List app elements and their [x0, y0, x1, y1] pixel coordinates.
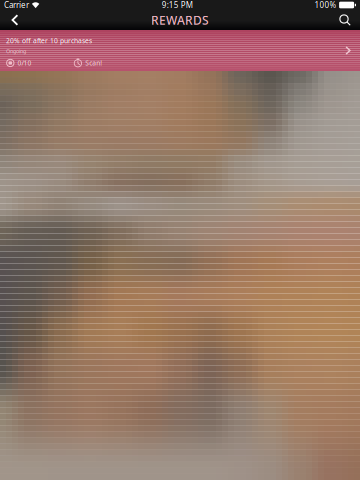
staticText: 20% off after 10 purchases [6, 36, 92, 45]
staticText: 0/10 [18, 58, 32, 67]
staticText: 9:15 PM [162, 0, 193, 10]
button[interactable]: Back [2, 10, 28, 30]
button[interactable]: Search [332, 10, 358, 30]
staticText: Ongoing [6, 48, 26, 55]
staticText: REWARDS [151, 12, 209, 28]
staticText: Scan! [85, 58, 102, 67]
button[interactable]: 20% off after 10 purchases [0, 30, 360, 71]
staticText: 100% [315, 0, 337, 10]
staticText: Carrier [4, 0, 29, 10]
